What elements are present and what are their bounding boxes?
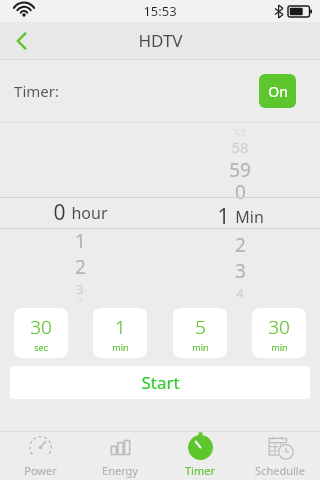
staticText: Schedulle <box>255 463 305 478</box>
staticText: 57 <box>234 127 246 137</box>
staticText: 59 <box>229 157 251 179</box>
staticText: Power <box>24 463 57 478</box>
staticText: Timer: <box>14 81 59 101</box>
staticText: 30 <box>30 314 52 340</box>
button[interactable]: Timer <box>160 432 240 480</box>
staticText: Start <box>141 371 180 394</box>
staticText: On <box>268 82 288 101</box>
button[interactable]: Energy <box>80 432 160 480</box>
staticText: 0 <box>53 198 66 227</box>
button[interactable]: 1 <box>93 308 147 358</box>
staticText: min <box>192 341 209 353</box>
staticText: 1 <box>115 314 126 340</box>
staticText: Timer <box>185 463 215 478</box>
staticText: 4 <box>236 284 244 300</box>
button[interactable]: Back <box>0 22 44 59</box>
staticText: 3 <box>76 280 84 296</box>
button[interactable]: Start <box>10 366 310 399</box>
button[interactable]: 30 <box>14 308 68 358</box>
staticText: 1 <box>217 202 230 231</box>
staticText: 0 <box>235 179 246 201</box>
staticText: 4 <box>77 296 83 303</box>
staticText: min <box>112 341 129 353</box>
staticText: 2 <box>235 232 246 258</box>
staticText: 3 <box>235 258 246 284</box>
button[interactable]: Power <box>0 432 80 480</box>
staticText: 30 <box>268 314 290 340</box>
staticText: 15:53 <box>143 2 177 20</box>
staticText: min <box>271 341 288 353</box>
staticText: HDTV <box>138 29 183 52</box>
button[interactable]: 5 <box>173 308 227 358</box>
staticText: 5 <box>195 314 206 340</box>
staticText: sec <box>34 341 48 353</box>
staticText: Energy <box>102 463 138 478</box>
staticText: hour <box>71 202 108 224</box>
staticText: 2 <box>75 254 86 280</box>
button[interactable]: Schedulle <box>240 432 320 480</box>
button[interactable]: 30 <box>252 308 306 358</box>
staticText: 1 <box>75 228 86 254</box>
staticText: 58 <box>231 137 249 157</box>
staticText: Min <box>235 206 264 228</box>
button[interactable]: On <box>259 74 296 108</box>
